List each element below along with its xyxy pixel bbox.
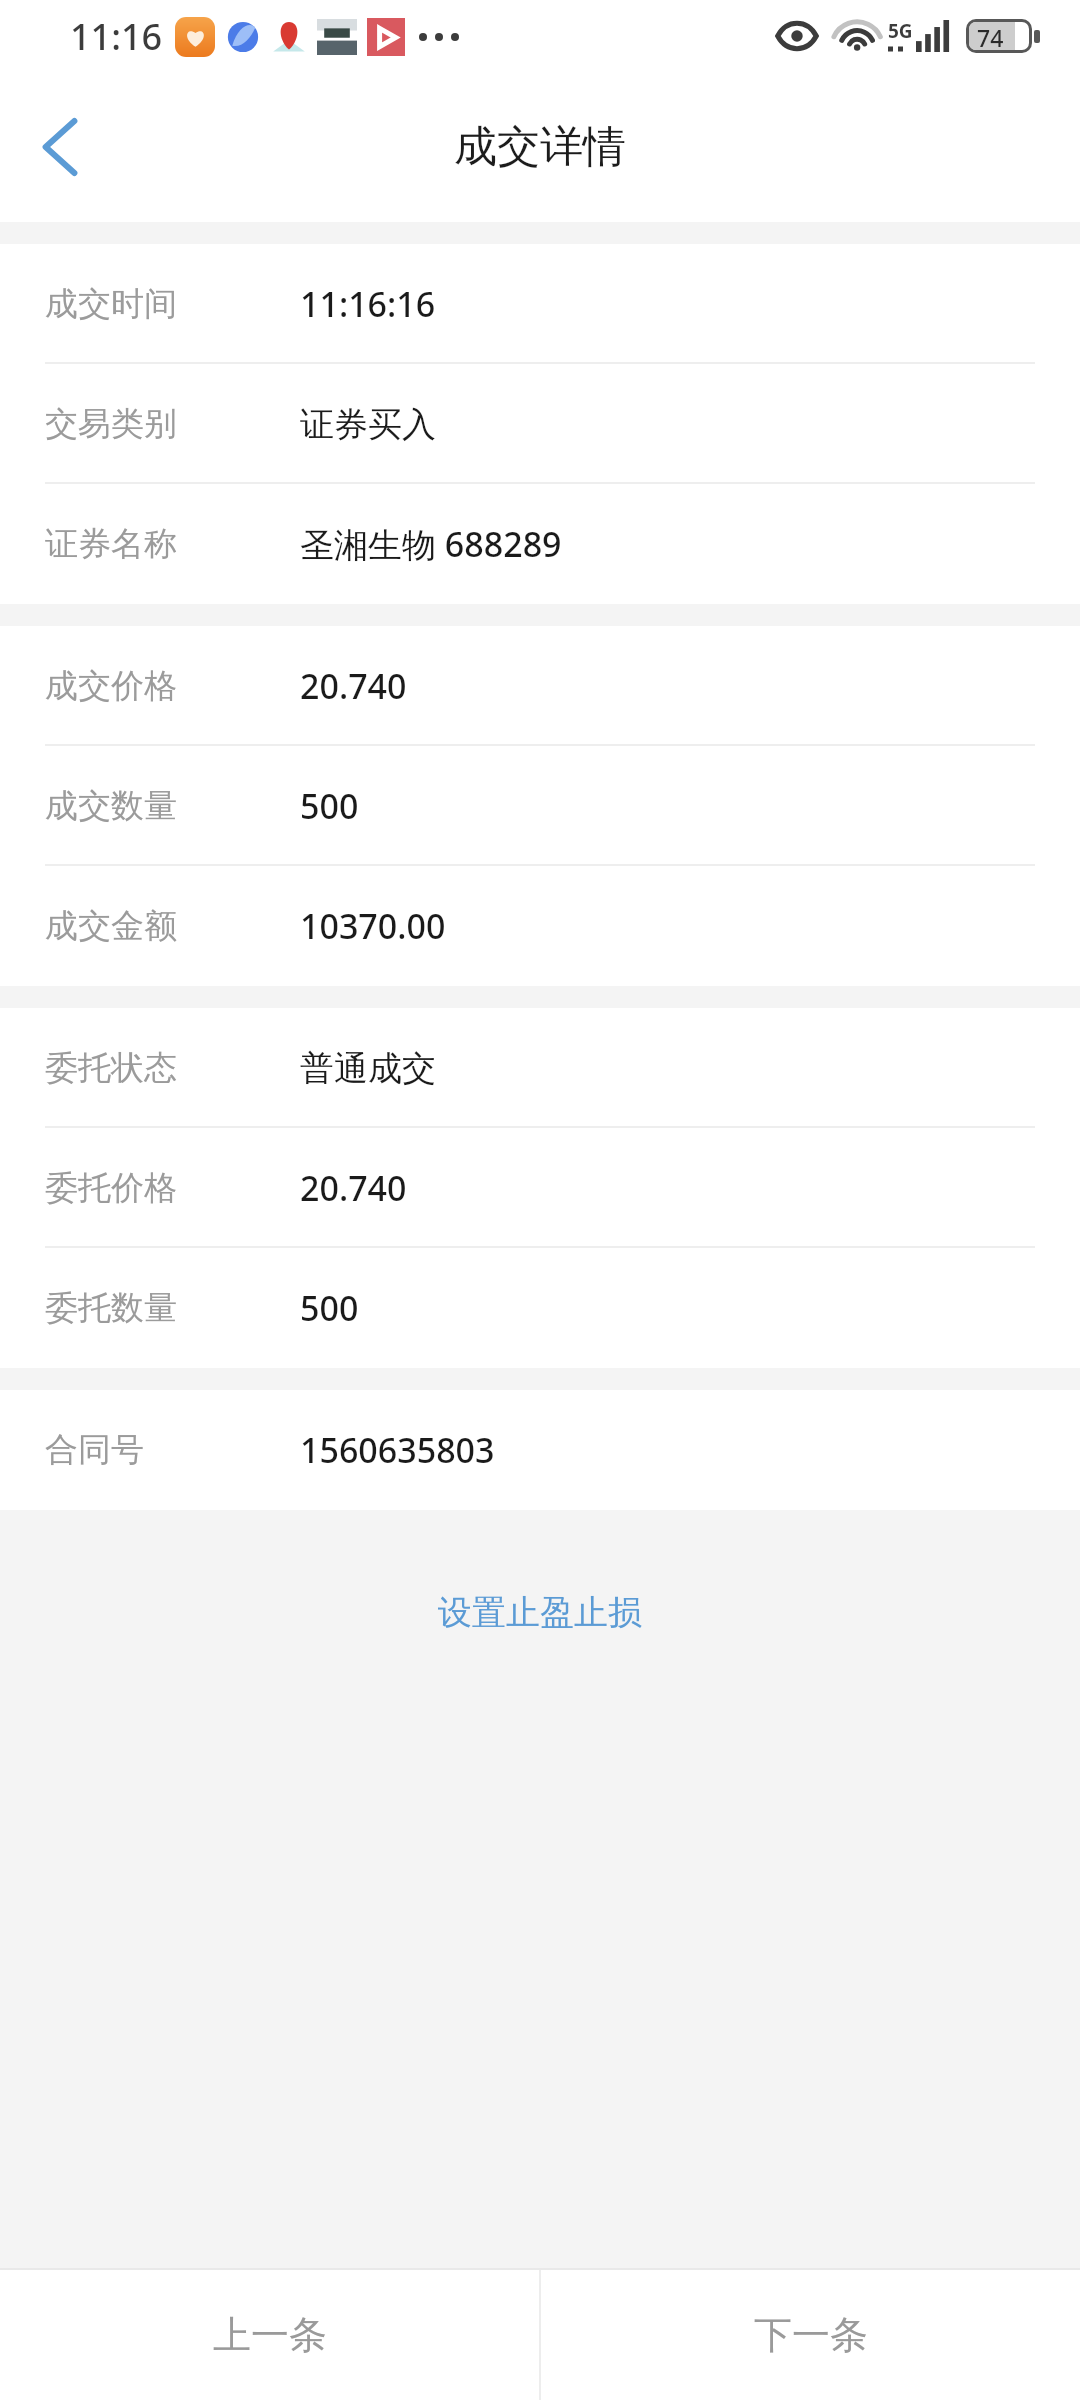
staticText: 设置止盈止损	[438, 1591, 642, 1634]
button[interactable]: 交易类别	[0, 364, 1080, 484]
staticText: 11:16:16	[300, 281, 436, 327]
button[interactable]: 成交数量	[0, 746, 1080, 866]
staticText: 500	[300, 783, 359, 829]
button[interactable]: 委托数量	[0, 1248, 1080, 1368]
staticText: 合同号	[45, 1429, 300, 1471]
staticText: 下一条	[754, 2311, 868, 2359]
staticText: 20.740	[300, 1165, 407, 1211]
staticText: 500	[300, 1285, 359, 1331]
staticText: 成交价格	[45, 665, 300, 707]
button[interactable]: Back	[12, 99, 108, 195]
button[interactable]: 证券名称	[0, 484, 1080, 604]
staticText: 5G	[888, 18, 913, 44]
staticText: 证券买入	[300, 403, 436, 446]
staticText: 成交时间	[45, 283, 300, 325]
button[interactable]: 成交价格	[0, 626, 1080, 746]
button[interactable]: 委托价格	[0, 1128, 1080, 1248]
staticText: 11:16	[70, 12, 163, 61]
staticText: 圣湘生物 688289	[300, 521, 562, 567]
staticText: 20.740	[300, 663, 407, 709]
button[interactable]: 合同号	[0, 1390, 1080, 1510]
button[interactable]: 设置止盈止损	[0, 1510, 1080, 1665]
staticText: 委托数量	[45, 1287, 300, 1329]
staticText: 成交数量	[45, 785, 300, 827]
staticText: 普通成交	[300, 1047, 436, 1090]
button[interactable]: 委托状态	[0, 1008, 1080, 1128]
staticText: 证券名称	[45, 523, 300, 565]
staticText: 成交详情	[454, 120, 626, 174]
staticText: 上一条	[213, 2311, 327, 2359]
staticText: 74	[977, 22, 1004, 50]
staticText: 成交金额	[45, 905, 300, 947]
staticText: 1560635803	[300, 1427, 495, 1473]
button[interactable]: 成交金额	[0, 866, 1080, 986]
button[interactable]: 成交时间	[0, 244, 1080, 364]
staticText: 10370.00	[300, 903, 446, 949]
staticText: 委托价格	[45, 1167, 300, 1209]
button[interactable]: 下一条	[541, 2270, 1080, 2400]
staticText: 交易类别	[45, 403, 300, 445]
button[interactable]: 上一条	[0, 2270, 539, 2400]
staticText: 委托状态	[45, 1047, 300, 1089]
